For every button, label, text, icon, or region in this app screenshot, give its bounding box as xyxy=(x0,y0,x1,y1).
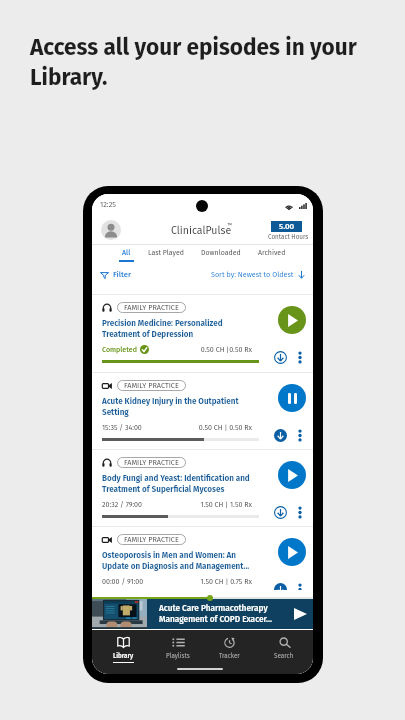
staticText: Tracker xyxy=(219,652,240,660)
staticText: Contact Hours xyxy=(268,233,309,241)
staticText: Last Played xyxy=(148,248,184,256)
staticText: Library xyxy=(113,652,134,660)
button[interactable]: Library xyxy=(98,630,148,664)
staticText: Sort by: Newest to Oldest xyxy=(211,270,294,279)
button[interactable]: Download xyxy=(274,583,287,590)
button[interactable]: Profile xyxy=(101,220,121,240)
button[interactable]: More options xyxy=(296,583,304,590)
button[interactable]: Play xyxy=(278,538,306,566)
button[interactable]: FAMILY PRACTICE xyxy=(92,294,313,372)
button[interactable]: Tracker xyxy=(204,630,254,664)
staticText: 5.00 xyxy=(279,222,295,232)
button[interactable]: FAMILY PRACTICE xyxy=(92,526,313,590)
staticText: Downloaded xyxy=(201,248,241,256)
staticText: 1.50 CH | 0.75 Rx xyxy=(190,577,252,586)
button[interactable]: Filter xyxy=(100,270,131,279)
button[interactable]: Playlists xyxy=(153,630,203,664)
staticText: 12:25 xyxy=(100,200,116,209)
staticText: Precision Medicine: Personalized Treatme… xyxy=(102,318,254,339)
button[interactable]: Play xyxy=(278,461,306,489)
staticText: Playlists xyxy=(166,652,190,660)
button[interactable]: FAMILY PRACTICE xyxy=(92,372,313,449)
staticText: 0.50 CH |0.50 Rx xyxy=(190,345,252,354)
button[interactable]: Last Played xyxy=(144,245,188,265)
staticText: Search xyxy=(274,652,294,660)
staticText: FAMILY PRACTICE xyxy=(124,381,179,390)
button[interactable]: More options xyxy=(296,506,304,519)
button[interactable]: FAMILY PRACTICE xyxy=(92,449,313,526)
staticText: FAMILY PRACTICE xyxy=(124,303,179,312)
button[interactable]: Pause xyxy=(278,384,306,412)
staticText: Osteoporosis in Men and Women: An Update… xyxy=(102,550,254,571)
staticText: Completed xyxy=(102,345,137,354)
button[interactable]: Play xyxy=(278,306,306,334)
button[interactable]: Play xyxy=(287,598,313,629)
staticText: 15:35 / 34:00 xyxy=(102,423,142,432)
button[interactable]: Acute Care Pharmacotherapy Management of… xyxy=(92,598,313,629)
staticText: Body Fungi and Yeast: Identification and… xyxy=(102,473,254,494)
button[interactable]: More options xyxy=(296,351,304,364)
staticText: 0.50 CH | 0.50 Rx xyxy=(190,423,252,432)
button[interactable]: More options xyxy=(296,429,304,442)
button[interactable]: Download xyxy=(274,351,287,364)
staticText: 20:32 / 79:00 xyxy=(102,500,143,509)
button[interactable]: Sort by: Newest to Oldest xyxy=(211,270,306,279)
staticText: Acute Kidney Injury in the Outpatient Se… xyxy=(102,396,254,417)
staticText: FAMILY PRACTICE xyxy=(124,458,179,467)
staticText: Access all your episodes in your Library… xyxy=(30,34,370,91)
button[interactable]: Download xyxy=(274,429,287,442)
button[interactable]: Downloaded xyxy=(197,245,245,265)
staticText: All xyxy=(122,248,131,256)
staticText: ™ xyxy=(227,222,232,229)
button[interactable]: Search xyxy=(259,630,309,664)
staticText: 1.50 CH | 1.50 Rx xyxy=(190,500,252,509)
staticText: FAMILY PRACTICE xyxy=(124,535,179,544)
staticText: Acute Care Pharmacotherapy Management of… xyxy=(159,603,287,624)
staticText: Archived xyxy=(258,248,286,256)
button[interactable]: 5.00 xyxy=(271,221,302,232)
button[interactable]: Archived xyxy=(254,245,290,265)
staticText: 00:00 / 91:00 xyxy=(102,577,144,586)
button[interactable]: All xyxy=(116,245,136,265)
staticText: ClinicalPulse xyxy=(171,224,232,237)
staticText: Filter xyxy=(113,270,131,279)
button[interactable]: Download xyxy=(274,506,287,519)
